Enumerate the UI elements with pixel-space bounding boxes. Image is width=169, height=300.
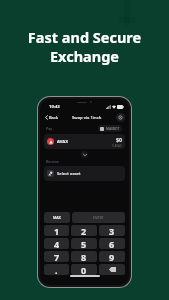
staticText: 3: [109, 225, 115, 236]
button[interactable]: Back: [45, 115, 59, 120]
button[interactable]: Backspace: [99, 264, 125, 275]
button[interactable]: ENTER: [72, 212, 125, 223]
button[interactable]: Settings: [116, 113, 125, 122]
staticText: Swap via 1inch: [72, 115, 102, 121]
staticText: 9: [109, 251, 115, 262]
staticText: 6: [109, 238, 115, 249]
button[interactable]: AVAX: [44, 134, 125, 149]
staticText: 1: [54, 225, 60, 236]
staticText: 5: [81, 238, 87, 249]
button[interactable]: 9: [99, 251, 125, 262]
staticText: 2: [81, 225, 87, 236]
button[interactable]: MAXBOT: [98, 125, 122, 132]
staticText: 10:43: [49, 104, 60, 110]
staticText: Receive: [46, 159, 59, 164]
staticText: Select asset: [57, 171, 81, 177]
staticText: 4: [54, 238, 60, 249]
staticText: MAXBOT: [106, 127, 120, 131]
staticText: 0: [81, 264, 87, 275]
button[interactable]: 6: [99, 238, 125, 249]
button[interactable]: MAX: [44, 212, 70, 223]
staticText: 7: [54, 251, 60, 262]
button[interactable]: 2: [71, 225, 97, 236]
staticText: .: [55, 264, 58, 275]
staticText: Pay: [46, 126, 53, 131]
staticText: MAX: [53, 215, 61, 220]
staticText: $0: [116, 136, 122, 143]
button[interactable]: 1: [44, 225, 69, 236]
staticText: 0 AVAX: [112, 144, 122, 148]
staticText: AVAX: [57, 139, 68, 145]
button[interactable]: 4: [44, 238, 69, 249]
button[interactable]: 8: [71, 251, 97, 262]
staticText: ENTER: [93, 215, 104, 220]
button[interactable]: 7: [44, 251, 69, 262]
button[interactable]: 3: [99, 225, 125, 236]
button[interactable]: 5: [71, 238, 97, 249]
button[interactable]: Swap direction: [81, 151, 88, 158]
button[interactable]: .: [44, 264, 69, 275]
staticText: 8: [81, 251, 87, 262]
button[interactable]: Select asset: [44, 166, 125, 181]
button[interactable]: 0: [71, 264, 97, 275]
staticText: Back: [49, 115, 59, 120]
staticText: Fast and Secure Exchange: [0, 27, 169, 66]
